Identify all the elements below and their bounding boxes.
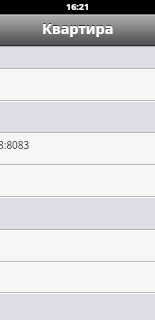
staticText: 16:21: [66, 0, 90, 12]
staticText: 8:8083: [0, 138, 30, 152]
staticText: Квартира: [42, 18, 114, 38]
button[interactable]: Квартира: [0, 14, 155, 46]
button[interactable]: 8:8083: [0, 134, 155, 164]
